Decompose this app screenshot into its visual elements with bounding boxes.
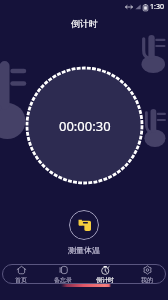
button[interactable]: 我的 xyxy=(126,264,168,284)
staticText: 00:00:30 xyxy=(59,117,111,135)
staticText: 倒计时 xyxy=(96,276,114,284)
button[interactable]: 测量体温 xyxy=(69,210,99,240)
button[interactable]: 倒计时 xyxy=(84,264,126,284)
button[interactable]: 首页 xyxy=(0,264,42,284)
staticText: 备忘录 xyxy=(54,276,72,284)
staticText: 测量体温 xyxy=(68,245,100,255)
button[interactable]: 备忘录 xyxy=(42,264,84,284)
staticText: 倒计时 xyxy=(71,18,98,29)
staticText: 我的 xyxy=(141,276,153,284)
button[interactable]: 00:00:30 xyxy=(25,66,144,185)
staticText: 首页 xyxy=(15,276,27,284)
staticText: 1:30 xyxy=(150,2,164,12)
